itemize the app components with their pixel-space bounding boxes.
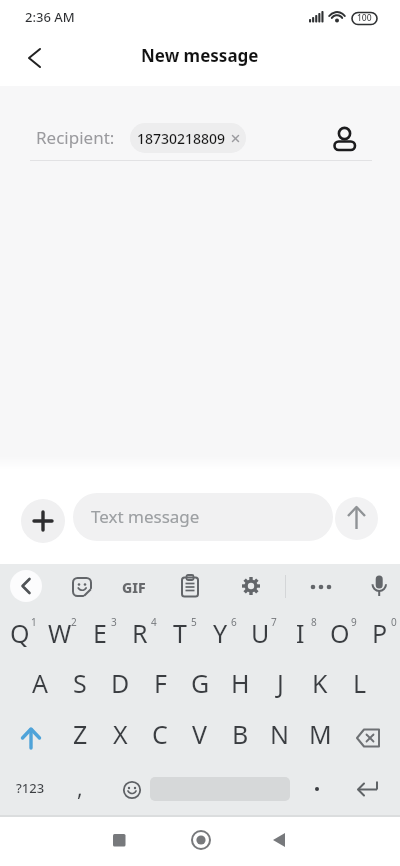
staticText: 4 bbox=[151, 615, 157, 629]
staticText: Text message bbox=[91, 505, 200, 528]
staticText: 0 bbox=[391, 615, 397, 629]
button[interactable]: T bbox=[160, 612, 200, 654]
button[interactable]: X bbox=[100, 713, 140, 755]
staticText: W bbox=[48, 616, 72, 650]
staticText: S bbox=[73, 666, 87, 700]
button[interactable]: G bbox=[180, 662, 220, 704]
staticText: 18730218809 bbox=[137, 129, 226, 148]
button[interactable]: V bbox=[180, 713, 220, 755]
button[interactable]: A bbox=[20, 662, 60, 704]
button[interactable] bbox=[300, 770, 334, 806]
staticText: H bbox=[231, 666, 250, 700]
button[interactable]: K bbox=[300, 662, 340, 704]
button[interactable]: M bbox=[300, 713, 340, 755]
button[interactable]: L bbox=[340, 662, 380, 704]
button[interactable]: Z bbox=[60, 713, 100, 755]
button[interactable] bbox=[335, 497, 378, 540]
button[interactable]: B bbox=[220, 713, 260, 755]
button[interactable]: O bbox=[320, 612, 360, 654]
button[interactable] bbox=[14, 42, 46, 74]
staticText: P bbox=[372, 616, 388, 650]
staticText: V bbox=[192, 717, 208, 751]
staticText: GIF bbox=[122, 578, 146, 597]
staticText: 6 bbox=[231, 615, 237, 629]
button[interactable]: D bbox=[100, 662, 140, 704]
staticText: 1 bbox=[31, 615, 37, 629]
staticText: New message bbox=[141, 44, 259, 67]
button[interactable] bbox=[263, 824, 295, 856]
button[interactable] bbox=[348, 717, 388, 759]
button[interactable] bbox=[176, 572, 204, 600]
staticText: N bbox=[270, 717, 290, 751]
staticText: 100 bbox=[357, 12, 372, 24]
button[interactable]: C bbox=[140, 713, 180, 755]
button[interactable]: F bbox=[140, 662, 180, 704]
button[interactable]: Q bbox=[0, 612, 40, 654]
button[interactable]: I bbox=[280, 612, 320, 654]
staticText: 8 bbox=[311, 615, 317, 629]
button[interactable]: H bbox=[220, 662, 260, 704]
staticText: C bbox=[152, 717, 168, 751]
staticText: L bbox=[353, 666, 367, 700]
button[interactable]: W bbox=[40, 612, 80, 654]
button[interactable] bbox=[118, 776, 146, 804]
button[interactable]: Text message bbox=[73, 493, 333, 541]
staticText: R bbox=[132, 616, 148, 650]
staticText: Q bbox=[10, 616, 30, 650]
staticText: 9 bbox=[351, 615, 357, 629]
staticText: 5 bbox=[191, 615, 197, 629]
staticText: K bbox=[312, 666, 328, 700]
button[interactable]: P bbox=[360, 612, 400, 654]
button[interactable]: N bbox=[260, 713, 300, 755]
staticText: E bbox=[93, 616, 107, 650]
staticText: T bbox=[173, 616, 187, 650]
staticText: Y bbox=[213, 616, 228, 650]
button[interactable] bbox=[68, 573, 96, 601]
staticText: M bbox=[309, 717, 332, 751]
button[interactable]: GIF bbox=[114, 576, 154, 598]
button[interactable] bbox=[237, 572, 265, 600]
button[interactable] bbox=[328, 122, 362, 156]
button[interactable]: E bbox=[80, 612, 120, 654]
staticText: Z bbox=[73, 717, 88, 751]
button[interactable]: ?123 bbox=[8, 768, 52, 808]
staticText: 3 bbox=[111, 615, 117, 629]
button[interactable]: U bbox=[240, 612, 280, 654]
button[interactable] bbox=[103, 824, 135, 856]
staticText: X bbox=[113, 717, 128, 751]
button[interactable]: Y bbox=[200, 612, 240, 654]
button[interactable] bbox=[350, 770, 388, 808]
button[interactable] bbox=[307, 573, 335, 601]
staticText: 2:36 AM bbox=[25, 8, 75, 26]
staticText: G bbox=[191, 666, 210, 700]
staticText: ?123 bbox=[16, 779, 45, 797]
button[interactable] bbox=[11, 717, 51, 759]
staticText: 7 bbox=[271, 615, 277, 629]
button[interactable] bbox=[10, 570, 42, 602]
staticText: O bbox=[330, 616, 350, 650]
button[interactable]: R bbox=[120, 612, 160, 654]
staticText: J bbox=[277, 666, 284, 700]
button[interactable] bbox=[185, 824, 217, 856]
button[interactable] bbox=[365, 572, 393, 600]
staticText: U bbox=[251, 616, 270, 650]
staticText: F bbox=[154, 666, 167, 700]
button[interactable]: S bbox=[60, 662, 100, 704]
staticText: Recipient: bbox=[36, 126, 115, 148]
staticText: I bbox=[296, 616, 305, 650]
button[interactable]: J bbox=[260, 662, 300, 704]
button[interactable] bbox=[21, 499, 65, 543]
staticText: A bbox=[32, 666, 48, 700]
staticText: 2 bbox=[71, 615, 77, 629]
staticText: D bbox=[111, 666, 130, 700]
button[interactable]: 18730218809 bbox=[130, 123, 246, 153]
staticText: B bbox=[232, 717, 249, 751]
button[interactable]: , bbox=[60, 768, 100, 808]
staticText: , bbox=[77, 774, 83, 803]
